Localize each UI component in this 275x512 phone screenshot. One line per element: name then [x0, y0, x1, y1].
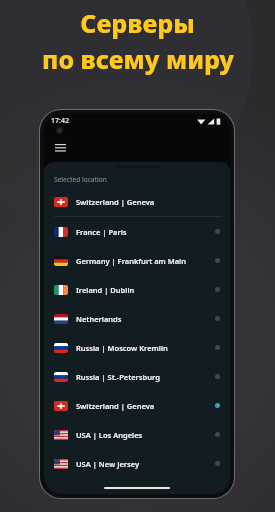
- staticText: Selected location: [54, 175, 107, 184]
- staticText: Netherlands: [76, 314, 122, 324]
- button[interactable]: Netherlands: [44, 304, 230, 333]
- staticText: USA | New Jersey: [76, 459, 140, 469]
- button[interactable]: Switzerland | Geneva: [44, 391, 230, 420]
- button[interactable]: USA | Los Angeles: [44, 420, 230, 449]
- button[interactable]: France | Paris: [44, 217, 230, 246]
- staticText: по всему миру: [42, 42, 234, 76]
- button[interactable]: Russia | St.-Petersburg: [44, 362, 230, 391]
- staticText: Russia | St.-Petersburg: [76, 372, 160, 382]
- button[interactable]: Switzerland | Geneva: [44, 187, 230, 216]
- staticText: Russia | Moscow Kremlin: [76, 343, 168, 353]
- staticText: Ireland | Dublin: [76, 285, 135, 295]
- button[interactable]: USA | New Jersey: [44, 449, 230, 478]
- staticText: Switzerland | Geneva: [76, 401, 155, 411]
- button[interactable]: Germany | Frankfurt am Main: [44, 246, 230, 275]
- staticText: Switzerland | Geneva: [76, 197, 155, 207]
- staticText: 17:42: [51, 116, 69, 126]
- staticText: Germany | Frankfurt am Main: [76, 256, 186, 266]
- staticText: Серверы: [80, 6, 195, 40]
- button[interactable]: Russia | Moscow Kremlin: [44, 333, 230, 362]
- button[interactable]: Ireland | Dublin: [44, 275, 230, 304]
- button[interactable]: Menu: [50, 138, 70, 156]
- staticText: USA | Los Angeles: [76, 430, 143, 440]
- staticText: France | Paris: [76, 227, 127, 237]
